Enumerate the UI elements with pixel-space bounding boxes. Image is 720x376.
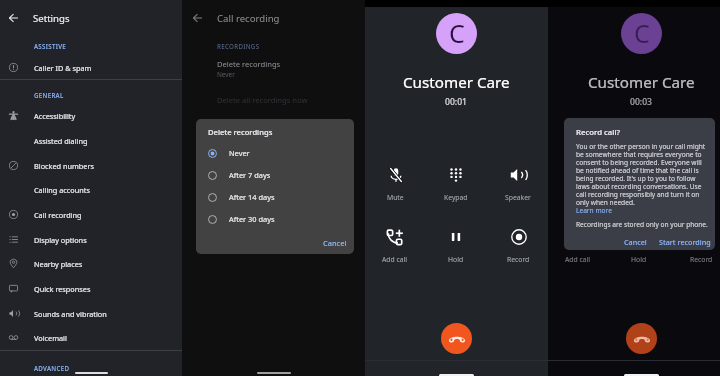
button[interactable]: Speaker [491, 167, 545, 207]
staticText: Nearby places [34, 259, 83, 269]
staticText: You or the other person in your call mig… [576, 142, 706, 207]
button[interactable]: Back [1, 6, 25, 30]
staticText: Add call [382, 255, 408, 264]
button[interactable]: End call [626, 323, 657, 354]
staticText: Customer Care [403, 72, 510, 93]
button[interactable]: Keypad [612, 167, 666, 207]
staticText: Cancel [323, 238, 347, 248]
staticText: Voicemail [34, 333, 67, 343]
staticText: ADVANCED [34, 364, 70, 372]
staticText: Never [229, 148, 250, 158]
staticText: Settings [33, 12, 70, 25]
button[interactable]: Never [196, 142, 354, 164]
staticText: After 7 days [229, 170, 271, 180]
staticText: C [449, 16, 465, 50]
staticText: After 30 days [229, 214, 275, 224]
button[interactable]: Mute [551, 167, 605, 207]
staticText: 00:03 [630, 96, 653, 108]
button[interactable]: Hold [429, 229, 483, 269]
button[interactable]: Quick responses [0, 276, 182, 301]
button[interactable]: Back [185, 6, 209, 30]
button[interactable]: Add call [551, 229, 605, 269]
button[interactable]: Mute [368, 167, 422, 207]
staticText: Delete recordings [208, 127, 273, 137]
button[interactable]: Voicemail [0, 325, 182, 350]
button[interactable]: Hold [612, 229, 666, 269]
staticText: Mute [387, 193, 404, 202]
button[interactable]: Blocked numbers [0, 153, 182, 178]
button[interactable]: Nearby places [0, 251, 182, 276]
button[interactable]: Assisted dialing [0, 128, 182, 153]
staticText: Record [690, 255, 713, 264]
button[interactable]: Delete recordings [182, 59, 366, 79]
staticText: Call recording [217, 12, 280, 25]
button[interactable]: Delete all recordings now [217, 95, 308, 105]
staticText: Record [507, 255, 530, 264]
staticText: Call recording [34, 210, 82, 220]
staticText: Keypad [444, 193, 468, 202]
staticText: Learn more [576, 206, 612, 215]
button[interactable]: Accessibility [0, 103, 182, 128]
button[interactable]: After 7 days [196, 164, 354, 186]
staticText: Delete recordings [217, 59, 281, 69]
staticText: Record call? [576, 127, 620, 138]
staticText: Delete all recordings now [217, 95, 308, 105]
staticText: Customer Care [588, 72, 695, 93]
staticText: Hold [631, 255, 647, 264]
button[interactable]: Sounds and vibration [0, 301, 182, 326]
button[interactable]: Cancel [314, 236, 354, 250]
button[interactable]: Record [674, 229, 720, 269]
staticText: Recordings are stored only on your phone… [576, 220, 708, 229]
button[interactable]: After 30 days [196, 208, 354, 230]
staticText: Display options [34, 235, 87, 245]
staticText: Speaker [505, 193, 531, 202]
button[interactable]: Speaker [674, 167, 720, 207]
staticText: Mute [570, 193, 587, 202]
staticText: Sounds and vibration [34, 309, 107, 319]
staticText: 00:01 [445, 96, 468, 108]
button[interactable]: Cancel [621, 235, 650, 249]
staticText: Caller ID & spam [34, 63, 92, 73]
staticText: RECORDINGS [217, 42, 260, 50]
staticText: Keypad [627, 193, 651, 202]
button[interactable]: Call recording [0, 202, 182, 227]
staticText: GENERAL [34, 91, 64, 99]
staticText: Blocked numbers [34, 161, 94, 171]
button[interactable]: Calling accounts [0, 177, 182, 202]
staticText: Never [217, 70, 235, 79]
staticText: Start recording [659, 237, 711, 247]
button[interactable]: After 14 days [196, 186, 354, 208]
staticText: Add call [565, 255, 591, 264]
staticText: Assisted dialing [34, 136, 88, 146]
staticText: Cancel [624, 237, 647, 247]
staticText: Hold [448, 255, 464, 264]
button[interactable]: Call recording [217, 12, 280, 25]
staticText: ASSISTIVE [34, 42, 67, 50]
button[interactable]: Keypad [429, 167, 483, 207]
button[interactable]: Record [491, 229, 545, 269]
staticText: Speaker [688, 193, 714, 202]
staticText: Accessibility [34, 111, 76, 121]
staticText: Calling accounts [34, 185, 90, 195]
button[interactable]: Learn more [576, 206, 612, 215]
button[interactable]: Settings [33, 12, 70, 25]
staticText: After 14 days [229, 192, 275, 202]
staticText: Quick responses [34, 284, 91, 294]
button[interactable]: Caller ID & spam [0, 55, 182, 80]
staticText: C [634, 16, 650, 50]
button[interactable]: Start recording [656, 235, 715, 249]
button[interactable]: Display options [0, 227, 182, 252]
button[interactable]: Add call [368, 229, 422, 269]
button[interactable]: End call [441, 323, 472, 354]
